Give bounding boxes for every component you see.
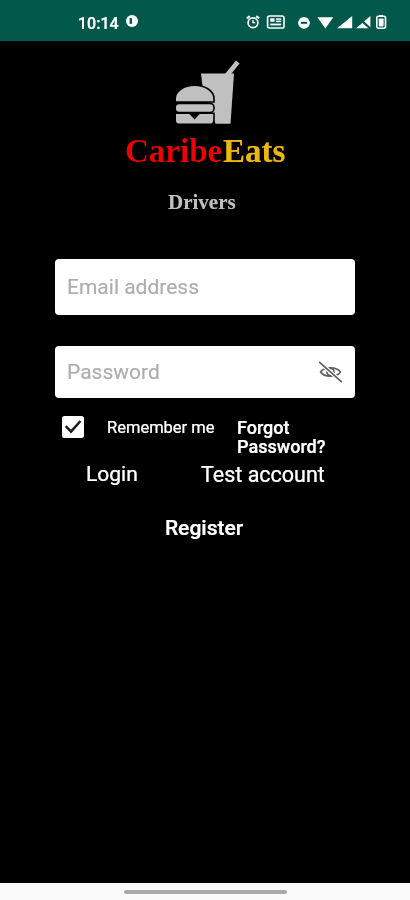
button[interactable]: Remember me xyxy=(62,416,215,438)
button[interactable]: Test account xyxy=(201,462,325,487)
button[interactable]: Login xyxy=(86,462,138,487)
button[interactable]: Show password xyxy=(315,357,345,387)
staticText: Eats xyxy=(223,133,286,170)
button[interactable]: Forgot Password? xyxy=(237,417,326,457)
staticText: Forgot Password? xyxy=(237,417,326,457)
staticText: Register xyxy=(165,516,244,541)
button[interactable]: Password xyxy=(55,346,355,398)
staticText: Login xyxy=(86,462,138,487)
staticText: Drivers xyxy=(168,190,236,213)
staticText: Password xyxy=(67,360,160,385)
staticText: Email address xyxy=(67,275,200,300)
staticText: Remember me xyxy=(107,418,215,437)
staticText: 10:14 xyxy=(78,14,119,33)
staticText: Test account xyxy=(201,462,325,487)
button[interactable]: Register xyxy=(165,516,244,541)
staticText: Caribe xyxy=(125,133,223,170)
button[interactable]: Email address xyxy=(55,259,355,315)
